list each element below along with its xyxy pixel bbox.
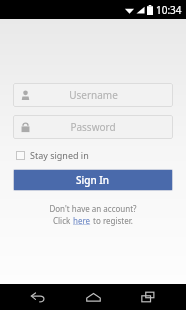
button[interactable]: Sign In: [14, 170, 172, 190]
staticText: Click: [53, 215, 73, 226]
button[interactable]: here: [73, 215, 91, 226]
button[interactable]: Password: [13, 115, 173, 139]
staticText: to register.: [91, 215, 133, 226]
staticText: Password: [70, 120, 116, 134]
staticText: 10:34: [156, 3, 182, 17]
button[interactable]: Stay signed in: [13, 148, 92, 162]
staticText: Stay signed in: [30, 149, 89, 161]
staticText: Sign In: [76, 173, 110, 187]
staticText: Username: [69, 88, 118, 102]
button[interactable]: Username: [13, 83, 173, 107]
button[interactable]: Back: [21, 284, 55, 310]
button[interactable]: Recent apps: [131, 284, 165, 310]
staticText: Don't have an account?: [49, 203, 137, 214]
button[interactable]: Home: [76, 284, 110, 310]
